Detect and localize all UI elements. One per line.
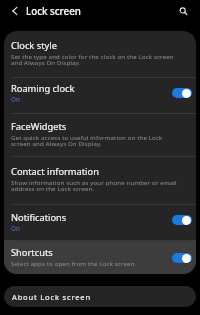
staticText: About Lock screen: [12, 292, 91, 302]
staticText: Select apps to open from the Lock screen…: [11, 259, 137, 267]
staticText: Roaming clock: [11, 82, 75, 95]
button[interactable]: Toggle: [172, 88, 192, 98]
button[interactable]: About Lock screen: [4, 286, 196, 307]
staticText: Lock screen: [26, 5, 81, 18]
button[interactable]: Search: [175, 3, 191, 19]
staticText: Notifications: [11, 211, 67, 224]
button[interactable]: [4, 31, 196, 77]
button[interactable]: [4, 156, 196, 204]
button[interactable]: [4, 204, 196, 241]
button[interactable]: Toggle: [172, 253, 192, 263]
staticText: Shortcuts: [11, 246, 53, 259]
staticText: Contact information: [11, 165, 99, 178]
button[interactable]: Back: [7, 3, 23, 19]
button[interactable]: [4, 240, 196, 274]
button[interactable]: Toggle: [172, 215, 192, 225]
staticText: Get quick access to useful information o…: [11, 133, 163, 148]
button[interactable]: [4, 77, 196, 113]
staticText: On: [11, 224, 20, 232]
staticText: Clock style: [11, 39, 57, 52]
staticText: Show information such as your phone numb…: [11, 178, 177, 193]
staticText: On: [11, 95, 20, 103]
staticText: FaceWidgets: [11, 120, 67, 133]
staticText: Set the type and color for the clock on …: [11, 52, 174, 67]
button[interactable]: [4, 113, 196, 157]
